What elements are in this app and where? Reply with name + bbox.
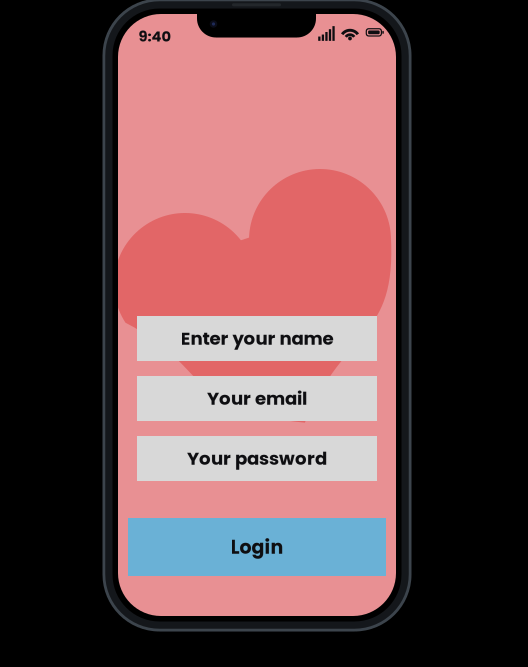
button[interactable]: Your password xyxy=(137,436,377,481)
staticText: Enter your name xyxy=(180,326,333,351)
button[interactable]: Login xyxy=(128,518,386,576)
staticText: 9:40 xyxy=(138,26,171,46)
staticText: Login xyxy=(230,534,283,560)
button[interactable]: Your email xyxy=(137,376,377,421)
staticText: Your password xyxy=(187,446,327,471)
staticText: Your email xyxy=(207,386,307,411)
button[interactable]: Enter your name xyxy=(137,316,377,361)
